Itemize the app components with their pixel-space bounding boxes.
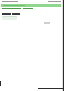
button[interactable] — [0, 7, 64, 10]
button[interactable]: Field — [2, 16, 17, 20]
button[interactable]: Banner — [1, 4, 61, 7]
button[interactable] — [0, 0, 64, 3]
